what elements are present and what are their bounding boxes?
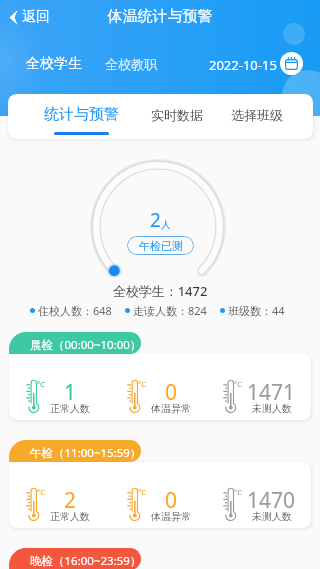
staticText: 体温异常 [151, 510, 191, 523]
button[interactable]: 全校教职 [105, 56, 157, 72]
staticText: 1470 [247, 486, 296, 515]
button[interactable]: 全校学生 [26, 55, 82, 73]
staticText: 晨检（00:00~10:00） [30, 337, 141, 353]
staticText: °C [138, 487, 146, 497]
button[interactable]: 选择班级 [227, 94, 287, 139]
staticText: 未测人数 [252, 510, 292, 523]
staticText: 0 [165, 486, 178, 515]
staticText: 2022-10-15 [209, 56, 277, 74]
staticText: 选择班级 [231, 107, 283, 123]
staticText: 走读人数：824 [133, 303, 207, 318]
button[interactable]: 午检已测 [127, 236, 194, 255]
button[interactable]: 选择日期 [280, 52, 303, 75]
staticText: °C [234, 487, 242, 497]
staticText: °C [234, 379, 242, 389]
staticText: 正常人数 [50, 402, 90, 415]
staticText: 1471 [247, 378, 296, 407]
staticText: °C [138, 379, 146, 389]
staticText: 0 [165, 378, 178, 407]
staticText: 实时数据 [151, 107, 203, 123]
staticText: 返回 [22, 8, 50, 26]
staticText: 班级数：44 [228, 303, 285, 318]
staticText: 1 [64, 378, 77, 407]
staticText: 2 [64, 486, 77, 515]
staticText: 全校学生：1472 [0, 282, 320, 300]
button[interactable]: 统计与预警 [36, 94, 126, 139]
staticText: 午检已测 [139, 239, 183, 253]
button[interactable]: °C [9, 462, 311, 528]
button[interactable]: 返回 [7, 5, 52, 29]
staticText: 未测人数 [252, 402, 292, 415]
staticText: 统计与预警 [44, 105, 119, 124]
staticText: 住校人数：648 [38, 303, 112, 318]
button[interactable]: 实时数据 [147, 94, 207, 139]
staticText: 体温异常 [151, 402, 191, 415]
staticText: 正常人数 [50, 510, 90, 523]
staticText: 2 [150, 207, 161, 233]
staticText: °C [37, 487, 45, 497]
staticText: 午检（11:00~15:59） [30, 445, 141, 461]
staticText: 人 [161, 218, 171, 231]
staticText: 晚检（16:00~23:59） [30, 553, 141, 569]
staticText: °C [37, 379, 45, 389]
button[interactable]: °C [9, 354, 311, 420]
staticText: 体温统计与预警 [0, 7, 320, 26]
